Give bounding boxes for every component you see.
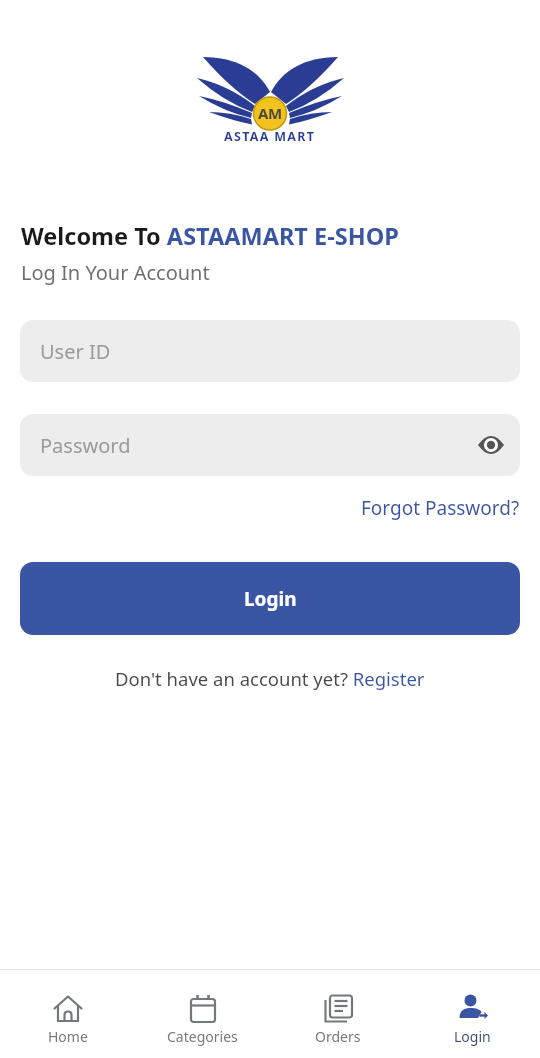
button[interactable]: Categories [135, 970, 270, 1058]
button[interactable]: Don't have an account yet? Register [115, 666, 425, 691]
staticText: Welcome To ASTAAMART E-SHOP [21, 220, 399, 252]
staticText: Password [40, 432, 131, 459]
button[interactable]: Login [405, 970, 540, 1058]
staticText: User ID [40, 338, 111, 365]
staticText: Login [454, 1027, 491, 1046]
staticText: Categories [167, 1027, 238, 1046]
button[interactable]: User ID [20, 320, 520, 382]
staticText: Orders [315, 1027, 361, 1046]
button[interactable]: Login [20, 562, 520, 635]
button[interactable]: Forgot Password? [361, 495, 520, 521]
staticText: AM [258, 103, 282, 123]
staticText: ASTAA MART [224, 128, 316, 145]
staticText: Login [244, 586, 297, 612]
button[interactable]: Home [0, 970, 135, 1058]
staticText: Log In Your Account [21, 259, 210, 286]
staticText: Home [48, 1027, 88, 1046]
button[interactable]: Orders [270, 970, 405, 1058]
button[interactable]: Password [20, 414, 520, 476]
